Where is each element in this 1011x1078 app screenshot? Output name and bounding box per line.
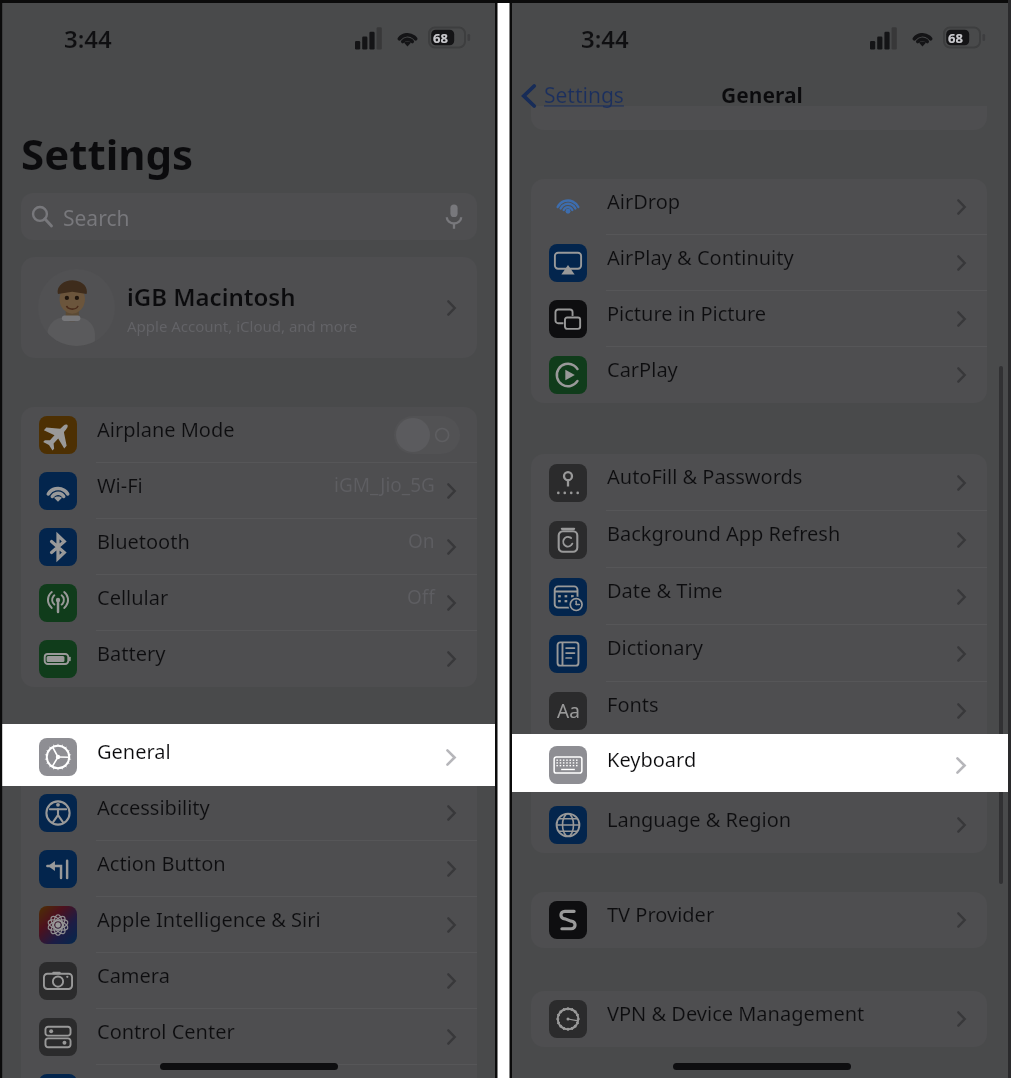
staticText: General xyxy=(721,81,803,110)
button[interactable]: Language & Region xyxy=(531,797,987,853)
staticText: 3:44 xyxy=(64,22,112,55)
staticText: Picture in Picture xyxy=(607,300,767,327)
button[interactable]: General xyxy=(21,729,477,785)
staticText: Bluetooth xyxy=(97,528,190,555)
staticText: Action Button xyxy=(97,850,226,877)
button[interactable]: Search xyxy=(21,193,477,240)
button[interactable]: Display & Brightness xyxy=(21,1065,477,1078)
button[interactable]: CarPlay xyxy=(531,347,987,403)
staticText: Settings xyxy=(544,81,624,110)
button[interactable]: Control Center xyxy=(21,1009,477,1065)
staticText: Cellular xyxy=(97,584,169,611)
staticText: Dictionary xyxy=(607,634,703,661)
staticText: Aa xyxy=(557,698,580,724)
staticText: AirDrop xyxy=(607,188,681,215)
button[interactable]: Wi-Fi xyxy=(21,463,477,519)
button[interactable]: Action Button xyxy=(21,841,477,897)
staticText: Apple Account, iCloud, and more xyxy=(127,316,358,336)
staticText: iGB Macintosh xyxy=(127,280,296,313)
staticText: Control Center xyxy=(97,1018,235,1045)
button[interactable]: AirPlay & Continuity xyxy=(531,235,987,291)
button[interactable]: Date & Time xyxy=(531,568,987,625)
button[interactable]: Apple Intelligence & Siri xyxy=(21,897,477,953)
staticText: Settings xyxy=(21,125,194,182)
staticText: Accessibility xyxy=(97,794,210,821)
button[interactable]: Accessibility xyxy=(21,785,477,841)
button[interactable]: Dictionary xyxy=(531,625,987,682)
button[interactable]: TV Provider xyxy=(531,892,987,948)
staticText: General xyxy=(97,738,171,765)
button[interactable]: AutoFill & Passwords xyxy=(531,454,987,511)
staticText: 68 xyxy=(433,29,448,47)
staticText: Apple Intelligence & Siri xyxy=(97,906,321,933)
button[interactable]: Bluetooth xyxy=(21,519,477,575)
staticText: Camera xyxy=(97,962,170,989)
staticText: TV Provider xyxy=(607,901,715,928)
button[interactable]: Keyboard xyxy=(531,737,987,793)
staticText: Battery xyxy=(97,640,166,667)
staticText: Fonts xyxy=(607,691,659,718)
staticText: Background App Refresh xyxy=(607,520,841,547)
button[interactable]: Aa xyxy=(531,682,987,739)
staticText: AirPlay & Continuity xyxy=(607,244,794,271)
button[interactable]: Background App Refresh xyxy=(531,511,987,568)
staticText: 68 xyxy=(948,29,963,47)
staticText: Language & Region xyxy=(607,806,792,833)
button[interactable]: Camera xyxy=(21,953,477,1009)
staticText: Off xyxy=(407,584,435,610)
staticText: 3:44 xyxy=(581,22,629,55)
staticText: On xyxy=(408,528,435,554)
button[interactable]: iGB Macintosh xyxy=(21,257,477,358)
staticText: Date & Time xyxy=(607,577,723,604)
button[interactable]: Cellular xyxy=(21,575,477,631)
staticText: iGM_Jio_5G xyxy=(334,472,435,498)
button[interactable]: Picture in Picture xyxy=(531,291,987,347)
staticText: Wi-Fi xyxy=(97,472,143,499)
button[interactable]: Airplane Mode xyxy=(21,407,477,463)
staticText: Search xyxy=(63,204,130,233)
staticText: VPN & Device Management xyxy=(607,1000,865,1027)
button[interactable]: Settings xyxy=(518,75,628,116)
button[interactable]: VPN & Device Management xyxy=(531,991,987,1047)
staticText: Airplane Mode xyxy=(97,416,235,443)
staticText: CarPlay xyxy=(607,356,678,383)
button[interactable] xyxy=(394,416,460,454)
other: Voice search xyxy=(445,203,463,230)
button[interactable]: AirDrop xyxy=(531,179,987,235)
staticText: AutoFill & Passwords xyxy=(607,463,803,490)
button[interactable]: Battery xyxy=(21,631,477,687)
staticText: Keyboard xyxy=(607,746,697,773)
